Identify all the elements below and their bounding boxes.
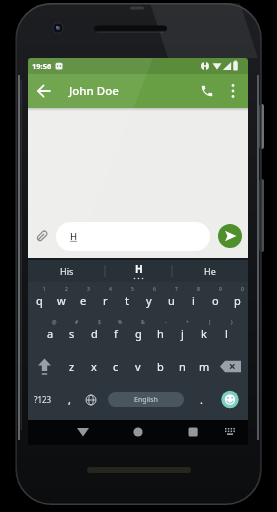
button[interactable]: English (102, 383, 190, 416)
button[interactable] (212, 383, 248, 416)
button[interactable]: b (149, 350, 171, 383)
button[interactable]: . (190, 383, 212, 416)
button[interactable]: ?123 (28, 383, 58, 416)
button[interactable] (215, 350, 248, 383)
staticText: w (57, 293, 66, 308)
button[interactable]: g (127, 317, 149, 350)
staticText: 5 (131, 286, 134, 293)
button[interactable]: m (193, 350, 215, 383)
staticText: ?123 (34, 394, 52, 405)
button[interactable] (102, 420, 175, 445)
staticText: 19:56 (32, 61, 52, 71)
staticText: v (135, 359, 141, 374)
staticText: - (165, 319, 167, 326)
staticText: 0 (241, 286, 244, 293)
button[interactable]: u (160, 284, 182, 317)
staticText: @ (52, 319, 57, 326)
staticText: English (134, 395, 158, 405)
staticText: i (192, 293, 195, 308)
staticText: His (60, 265, 74, 277)
staticText: 8 (197, 286, 200, 293)
button[interactable]: a (39, 317, 61, 350)
staticText: s (69, 326, 75, 341)
button[interactable]: He (172, 260, 248, 282)
button[interactable]: v (127, 350, 149, 383)
staticText: # (75, 319, 79, 326)
button[interactable]: H (105, 260, 172, 282)
button[interactable]: p (226, 284, 248, 317)
staticText: b (157, 359, 164, 374)
staticText: e (80, 293, 87, 308)
button[interactable]: l (215, 317, 237, 350)
staticText: z (69, 359, 75, 374)
staticText: l (225, 326, 228, 341)
staticText: m (199, 359, 210, 374)
staticText: John Doe (69, 83, 119, 99)
button[interactable]: y (138, 284, 160, 317)
button[interactable]: n (171, 350, 193, 383)
button[interactable]: k (193, 317, 215, 350)
staticText: ) (231, 319, 233, 326)
staticText: & (141, 319, 145, 326)
staticText: y (146, 293, 152, 308)
staticText: c (113, 359, 119, 374)
staticText: j (181, 326, 184, 341)
button[interactable] (175, 420, 248, 445)
button[interactable]: c (105, 350, 127, 383)
staticText: q (36, 293, 43, 308)
staticText: h (157, 326, 164, 341)
staticText: k (201, 326, 207, 341)
button[interactable]: o (204, 284, 226, 317)
button[interactable]: x (83, 350, 105, 383)
button[interactable]: i (182, 284, 204, 317)
staticText: g (135, 326, 142, 341)
staticText: o (212, 293, 219, 308)
staticText: n (179, 359, 186, 374)
staticText: ( (209, 319, 211, 326)
staticText: a (47, 326, 54, 341)
button[interactable] (80, 383, 102, 416)
button[interactable]: j (171, 317, 193, 350)
staticText: H (135, 262, 143, 276)
button[interactable] (199, 83, 215, 99)
button[interactable]: e (72, 284, 94, 317)
button[interactable]: His (28, 260, 105, 282)
button[interactable]: q (28, 284, 50, 317)
button[interactable] (36, 83, 52, 99)
button[interactable] (28, 350, 61, 383)
button[interactable]: t (116, 284, 138, 317)
staticText: t (125, 293, 129, 308)
staticText: . (200, 392, 203, 407)
button[interactable] (227, 83, 239, 99)
staticText: u (168, 293, 175, 308)
button[interactable]: h (149, 317, 171, 350)
staticText: d (91, 326, 98, 341)
button[interactable]: w (50, 284, 72, 317)
button[interactable]: d (83, 317, 105, 350)
button[interactable]: z (61, 350, 83, 383)
button[interactable]: r (94, 284, 116, 317)
staticText: 1 (43, 286, 46, 293)
staticText: x (91, 359, 97, 374)
button[interactable]: H (56, 222, 210, 251)
staticText: He (204, 265, 216, 277)
button[interactable] (28, 420, 102, 445)
button[interactable]: , (58, 383, 80, 416)
button[interactable] (218, 224, 242, 248)
staticText: + (186, 319, 189, 326)
staticText: p (234, 293, 241, 308)
staticText: 6 (153, 286, 156, 293)
staticText: 9 (219, 286, 222, 293)
staticText: , (68, 392, 71, 407)
staticText: 3 (87, 286, 90, 293)
staticText: H (70, 230, 78, 243)
staticText: % (118, 319, 123, 326)
staticText: 2 (65, 286, 68, 293)
staticText: f (114, 326, 118, 341)
staticText: $ (98, 319, 101, 326)
staticText: 4 (109, 286, 112, 293)
button[interactable]: s (61, 317, 83, 350)
staticText: r (103, 293, 108, 308)
button[interactable]: f (105, 317, 127, 350)
staticText: 7 (175, 286, 178, 293)
